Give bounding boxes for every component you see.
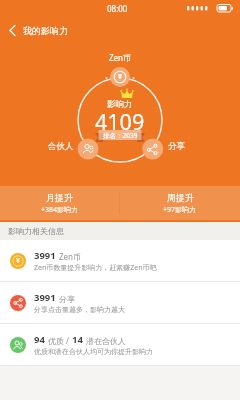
staticText: 08:00	[107, 3, 128, 14]
staticText: 潜在合伙人	[86, 336, 126, 346]
button[interactable]: 月提升	[0, 186, 119, 220]
staticText: 分享	[59, 294, 75, 304]
staticText: 94	[34, 333, 45, 346]
staticText: 我的影响力	[23, 25, 68, 36]
staticText: 周提升	[167, 192, 194, 203]
staticText: 分享点击量越多，影响力越大	[34, 305, 125, 314]
staticText: 合伙人	[48, 141, 74, 152]
staticText: 优质和潜在合伙人均可为你提升影响力	[34, 347, 153, 356]
staticText: Zen币	[59, 251, 82, 262]
staticText: +384影响力	[41, 205, 79, 215]
button[interactable]: 3991	[0, 282, 240, 323]
staticText: 月提升	[46, 192, 73, 203]
staticText: 3991	[34, 249, 56, 262]
staticText: 4109	[95, 107, 145, 136]
button[interactable]: ¥	[0, 240, 240, 281]
staticText: 影响力	[107, 99, 133, 110]
staticText: 优质 /	[48, 335, 72, 346]
staticText: ¥	[118, 72, 123, 82]
button[interactable]: 94	[0, 324, 240, 365]
button[interactable]: 我的影响力	[0, 16, 240, 44]
staticText: Zen币数量提升影响力，赶紧赚Zen币吧	[34, 263, 157, 273]
staticText: 3991	[34, 291, 56, 304]
staticText: 排名：2039	[103, 131, 138, 140]
staticText: Zen币	[109, 52, 132, 63]
staticText: ¥	[16, 256, 21, 266]
staticText: 14	[72, 333, 83, 346]
staticText: 分享	[168, 141, 185, 152]
staticText: +97影响力	[163, 205, 197, 215]
staticText: 影响力相关信息	[8, 226, 64, 236]
button[interactable]: 周提升	[120, 186, 240, 220]
